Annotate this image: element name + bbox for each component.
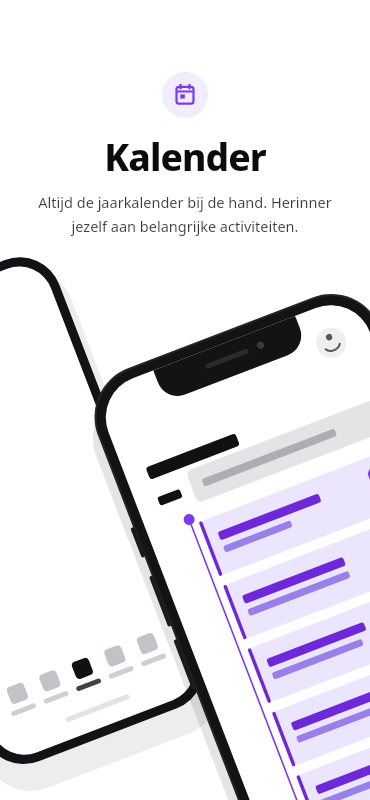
- staticText: Altijd de jaarkalender bij de hand. Heri…: [38, 192, 332, 236]
- button[interactable]: Kalender icoon: [162, 72, 208, 118]
- staticText: Kalender: [104, 131, 266, 181]
